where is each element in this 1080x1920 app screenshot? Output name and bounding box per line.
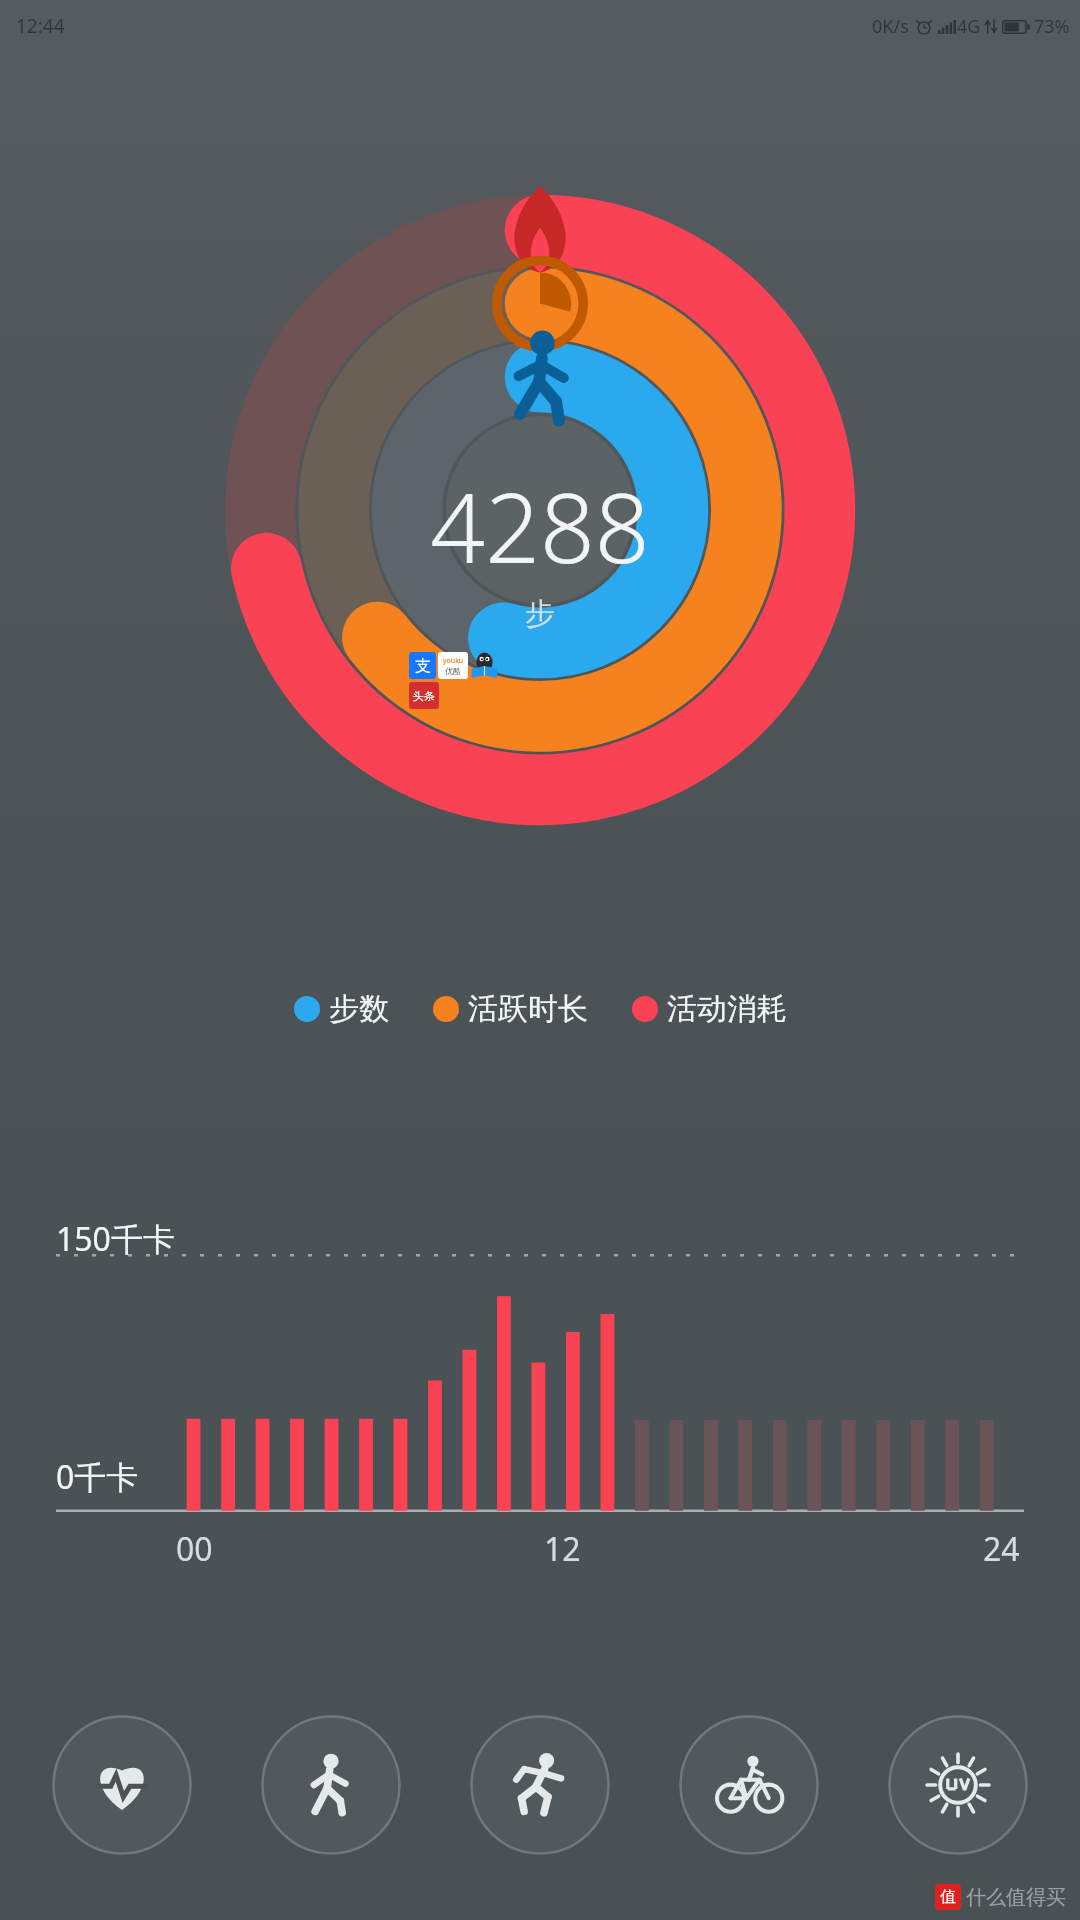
button[interactable]: Activity rings: [210, 180, 870, 840]
staticText: 步: [525, 595, 555, 633]
button[interactable]: Walking: [261, 1715, 401, 1855]
button[interactable]: Heart rate: [52, 1715, 192, 1855]
staticText: 0千卡: [56, 1455, 139, 1499]
staticText: 头条: [413, 689, 435, 703]
staticText: 0K/s: [872, 14, 909, 39]
staticText: 00: [176, 1527, 213, 1571]
button[interactable]: 活跃时长: [433, 990, 588, 1028]
staticText: 12:44: [16, 13, 65, 39]
button[interactable]: 步数: [294, 990, 389, 1028]
button[interactable]: Cycling: [679, 1715, 819, 1855]
staticText: 步数: [329, 990, 389, 1028]
staticText: 12: [544, 1527, 581, 1571]
staticText: youku: [443, 656, 464, 666]
staticText: 4288: [430, 460, 650, 591]
staticText: 什么值得买: [966, 1885, 1066, 1910]
staticText: 活跃时长: [468, 990, 588, 1028]
staticText: 150千卡: [56, 1217, 175, 1261]
staticText: 活动消耗: [667, 990, 787, 1028]
button[interactable]: UV index: [888, 1715, 1028, 1855]
staticText: 4G: [957, 14, 981, 39]
staticText: 73%: [1034, 14, 1070, 39]
staticText: 值: [940, 1887, 956, 1907]
button[interactable]: Running: [470, 1715, 610, 1855]
staticText: 支: [415, 656, 431, 676]
staticText: 优酷: [445, 666, 461, 676]
staticText: 24: [983, 1527, 1020, 1571]
button[interactable]: 活动消耗: [632, 990, 787, 1028]
